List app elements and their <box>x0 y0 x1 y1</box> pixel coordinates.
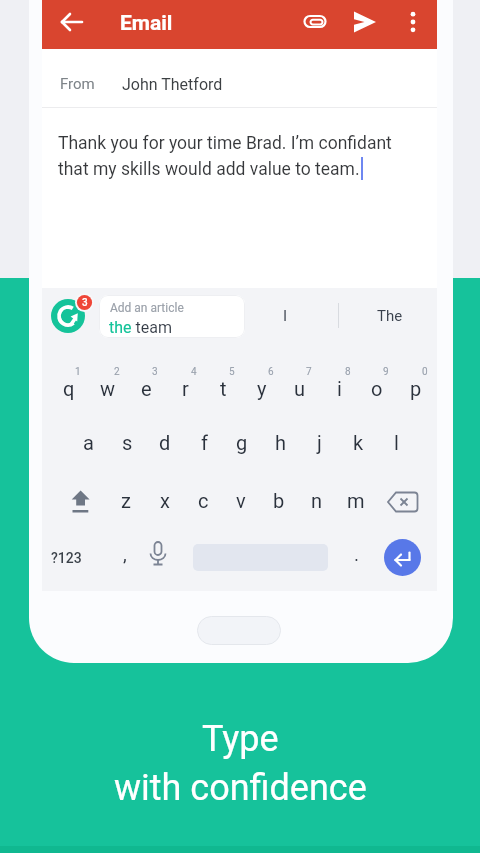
staticText: 1 <box>75 366 81 378</box>
button[interactable]: f <box>185 416 223 468</box>
button[interactable] <box>351 8 379 36</box>
button[interactable] <box>384 539 421 576</box>
staticText: z <box>121 489 131 512</box>
staticText: p <box>410 377 422 400</box>
staticText: c <box>198 489 209 512</box>
staticText: ?123 <box>51 550 82 566</box>
button[interactable] <box>58 8 86 36</box>
button[interactable]: h <box>262 416 300 468</box>
staticText: m <box>347 489 365 512</box>
staticText: 5 <box>229 366 235 378</box>
button[interactable]: z <box>107 474 145 526</box>
staticText: 4 <box>191 366 197 378</box>
button[interactable]: s <box>108 416 146 468</box>
staticText: From <box>60 75 95 93</box>
staticText: v <box>236 489 246 512</box>
button[interactable]: w <box>89 362 127 414</box>
button[interactable]: From <box>42 49 437 108</box>
button[interactable] <box>301 8 329 36</box>
staticText: l <box>394 431 399 454</box>
button[interactable]: u <box>281 362 319 414</box>
button[interactable]: o <box>358 362 396 414</box>
staticText: . <box>354 543 360 565</box>
staticText: The <box>377 307 403 325</box>
staticText: Add an article <box>110 301 184 315</box>
staticText: b <box>273 489 285 512</box>
staticText: t <box>220 377 227 400</box>
staticText: f <box>201 431 208 454</box>
button[interactable]: r <box>166 362 204 414</box>
staticText: I <box>283 307 288 325</box>
button[interactable]: The <box>355 293 425 338</box>
staticText: x <box>160 489 170 512</box>
staticText: j <box>317 431 322 454</box>
button[interactable]: q <box>50 362 88 414</box>
staticText: Email <box>120 11 173 36</box>
staticText: Type <box>202 718 279 760</box>
staticText: 2 <box>114 366 120 378</box>
staticText: 0 <box>422 366 428 378</box>
staticText: 8 <box>345 366 351 378</box>
button[interactable] <box>51 299 85 333</box>
staticText: s <box>122 431 133 454</box>
staticText: a <box>83 431 94 454</box>
button[interactable]: n <box>298 474 336 526</box>
button[interactable]: g <box>223 416 261 468</box>
staticText: g <box>236 431 248 454</box>
button[interactable] <box>197 616 281 645</box>
staticText: 6 <box>268 366 274 378</box>
button[interactable]: x <box>146 474 184 526</box>
button[interactable]: m <box>337 474 375 526</box>
staticText: d <box>159 431 171 454</box>
button[interactable] <box>64 484 96 516</box>
staticText: h <box>275 431 287 454</box>
button[interactable]: , <box>106 528 144 580</box>
button[interactable]: j <box>300 416 338 468</box>
button[interactable]: b <box>260 474 298 526</box>
staticText: e <box>141 377 152 400</box>
button[interactable]: y <box>243 362 281 414</box>
staticText: with confidence <box>114 767 367 809</box>
button[interactable]: I <box>250 293 320 338</box>
staticText: 7 <box>306 366 312 378</box>
button[interactable]: a <box>69 416 107 468</box>
staticText: i <box>337 377 342 400</box>
button[interactable]: v <box>222 474 260 526</box>
button[interactable]: t <box>204 362 242 414</box>
button[interactable] <box>385 486 421 518</box>
staticText: n <box>311 489 323 512</box>
button[interactable]: Add an article <box>99 295 245 338</box>
button[interactable]: e <box>127 362 165 414</box>
staticText: u <box>294 377 306 400</box>
staticText: Thank you for your time Brad. I’m confid… <box>58 133 392 154</box>
staticText: k <box>353 431 364 454</box>
staticText: r <box>182 377 189 400</box>
staticText: w <box>100 377 116 400</box>
staticText: y <box>257 377 267 400</box>
staticText: 3 <box>82 297 88 309</box>
staticText: o <box>371 377 383 400</box>
staticText: 9 <box>383 366 389 378</box>
staticText: John Thetford <box>122 75 223 94</box>
staticText: that my skills would add value to team. <box>58 159 360 180</box>
button[interactable]: k <box>339 416 377 468</box>
button[interactable]: . <box>338 528 376 580</box>
button[interactable] <box>399 8 427 36</box>
button[interactable] <box>144 540 172 570</box>
button[interactable]: i <box>320 362 358 414</box>
button[interactable]: c <box>184 474 222 526</box>
button[interactable]: p <box>397 362 435 414</box>
staticText: q <box>63 377 75 400</box>
staticText: , <box>123 543 127 565</box>
button[interactable]: d <box>146 416 184 468</box>
button[interactable]: l <box>377 416 415 468</box>
staticText: the team <box>109 318 172 337</box>
staticText: 3 <box>152 366 158 378</box>
